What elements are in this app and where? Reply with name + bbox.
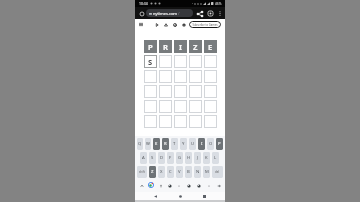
button[interactable]: M bbox=[203, 166, 210, 178]
staticText: K bbox=[205, 155, 208, 161]
button[interactable]: Reload bbox=[138, 10, 145, 17]
button[interactable]: More bbox=[215, 182, 222, 189]
staticText: A bbox=[142, 155, 145, 161]
button[interactable]: T bbox=[171, 138, 178, 150]
button[interactable]: G bbox=[176, 152, 183, 164]
staticText: G bbox=[178, 155, 182, 161]
staticText: R bbox=[164, 141, 167, 147]
button[interactable]: Search bbox=[157, 182, 164, 189]
button[interactable]: J bbox=[194, 152, 201, 164]
staticText: L bbox=[214, 155, 217, 161]
staticText: U bbox=[191, 141, 195, 147]
staticText: B bbox=[187, 169, 190, 175]
staticText: Subscribe to Games bbox=[192, 23, 218, 27]
staticText: P bbox=[218, 141, 221, 147]
button[interactable]: Q bbox=[137, 138, 143, 150]
staticText: E bbox=[208, 42, 213, 52]
button[interactable]: Recent apps bbox=[201, 193, 208, 200]
staticText: N bbox=[196, 169, 200, 175]
button[interactable]: H bbox=[185, 152, 192, 164]
button[interactable]: Share bbox=[195, 9, 204, 18]
button[interactable]: Backspace bbox=[212, 166, 223, 178]
staticText: Z bbox=[151, 169, 154, 175]
staticText: P bbox=[148, 42, 153, 52]
button[interactable]: E bbox=[153, 138, 160, 150]
staticText: M bbox=[205, 169, 209, 175]
staticText: nytimes.com bbox=[153, 11, 178, 16]
button[interactable]: Clipboard bbox=[195, 182, 202, 189]
button[interactable]: D bbox=[158, 152, 165, 164]
button[interactable]: Sticker bbox=[175, 182, 182, 189]
button[interactable]: S bbox=[149, 152, 156, 164]
button[interactable]: Emoji bbox=[166, 182, 173, 189]
button[interactable]: Subscribe to Games bbox=[189, 21, 221, 28]
staticText: I bbox=[201, 141, 203, 147]
button[interactable]: GIF bbox=[185, 182, 192, 189]
button[interactable]: X bbox=[158, 166, 165, 178]
button[interactable]: Shift bbox=[137, 166, 147, 178]
button[interactable]: K bbox=[203, 152, 210, 164]
staticText: W bbox=[146, 141, 150, 147]
staticText: D bbox=[160, 155, 164, 161]
staticText: E bbox=[155, 141, 158, 147]
button[interactable]: U bbox=[189, 138, 196, 150]
button[interactable]: Back bbox=[152, 193, 159, 200]
staticText: J bbox=[197, 155, 199, 161]
button[interactable]: P bbox=[216, 138, 223, 150]
staticText: O bbox=[209, 141, 213, 147]
staticText: V bbox=[178, 169, 181, 175]
button[interactable]: I bbox=[198, 138, 205, 150]
button[interactable]: Z bbox=[149, 166, 156, 178]
staticText: R bbox=[163, 42, 168, 52]
button[interactable]: Statistics bbox=[162, 21, 169, 28]
button[interactable]: Settings bbox=[205, 182, 212, 189]
staticText: S bbox=[151, 155, 154, 161]
button[interactable]: Expand bbox=[138, 182, 145, 189]
staticText: /games/wo bbox=[178, 11, 193, 16]
staticText: H bbox=[187, 155, 191, 161]
button[interactable]: nytimes.com bbox=[146, 9, 193, 17]
button[interactable]: B bbox=[185, 166, 192, 178]
button[interactable]: Settings bbox=[180, 21, 187, 28]
button[interactable]: L bbox=[212, 152, 219, 164]
staticText: I bbox=[179, 42, 182, 52]
button[interactable]: Play bbox=[153, 21, 160, 28]
button[interactable]: Y bbox=[180, 138, 187, 150]
staticText: del bbox=[215, 170, 220, 174]
button[interactable]: R bbox=[162, 138, 169, 150]
button[interactable]: A bbox=[140, 152, 147, 164]
button[interactable]: Home bbox=[177, 193, 184, 200]
staticText: T bbox=[173, 141, 176, 147]
staticText: shift bbox=[139, 170, 145, 174]
staticText: X bbox=[160, 169, 163, 175]
button[interactable]: Profile bbox=[206, 9, 215, 18]
button[interactable]: O bbox=[207, 138, 214, 150]
button[interactable]: More options bbox=[216, 10, 223, 17]
staticText: S bbox=[148, 57, 153, 67]
button[interactable]: C bbox=[167, 166, 174, 178]
staticText: Z bbox=[193, 42, 198, 52]
button[interactable]: Help bbox=[171, 21, 178, 28]
staticText: 46% bbox=[215, 2, 222, 6]
button[interactable]: W bbox=[145, 138, 151, 150]
button[interactable]: N bbox=[194, 166, 201, 178]
staticText: F bbox=[169, 155, 172, 161]
button[interactable]: Google Assistant bbox=[147, 181, 155, 189]
button[interactable]: V bbox=[176, 166, 183, 178]
staticText: Y bbox=[182, 141, 185, 147]
staticText: Q bbox=[138, 141, 142, 147]
staticText: 10:34 bbox=[139, 1, 148, 6]
button[interactable]: F bbox=[167, 152, 174, 164]
button[interactable]: Menu bbox=[137, 21, 144, 28]
staticText: C bbox=[169, 169, 172, 175]
